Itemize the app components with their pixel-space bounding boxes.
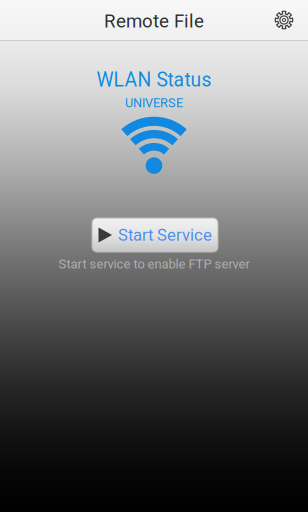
staticText: Start Service — [118, 225, 212, 245]
button[interactable]: Settings — [262, 0, 306, 40]
staticText: Start service to enable FTP server — [58, 256, 249, 272]
staticText: WLAN Status — [96, 69, 211, 91]
button[interactable]: Start Service — [92, 218, 218, 252]
staticText: Remote File — [104, 10, 204, 32]
staticText: UNIVERSE — [125, 96, 183, 110]
